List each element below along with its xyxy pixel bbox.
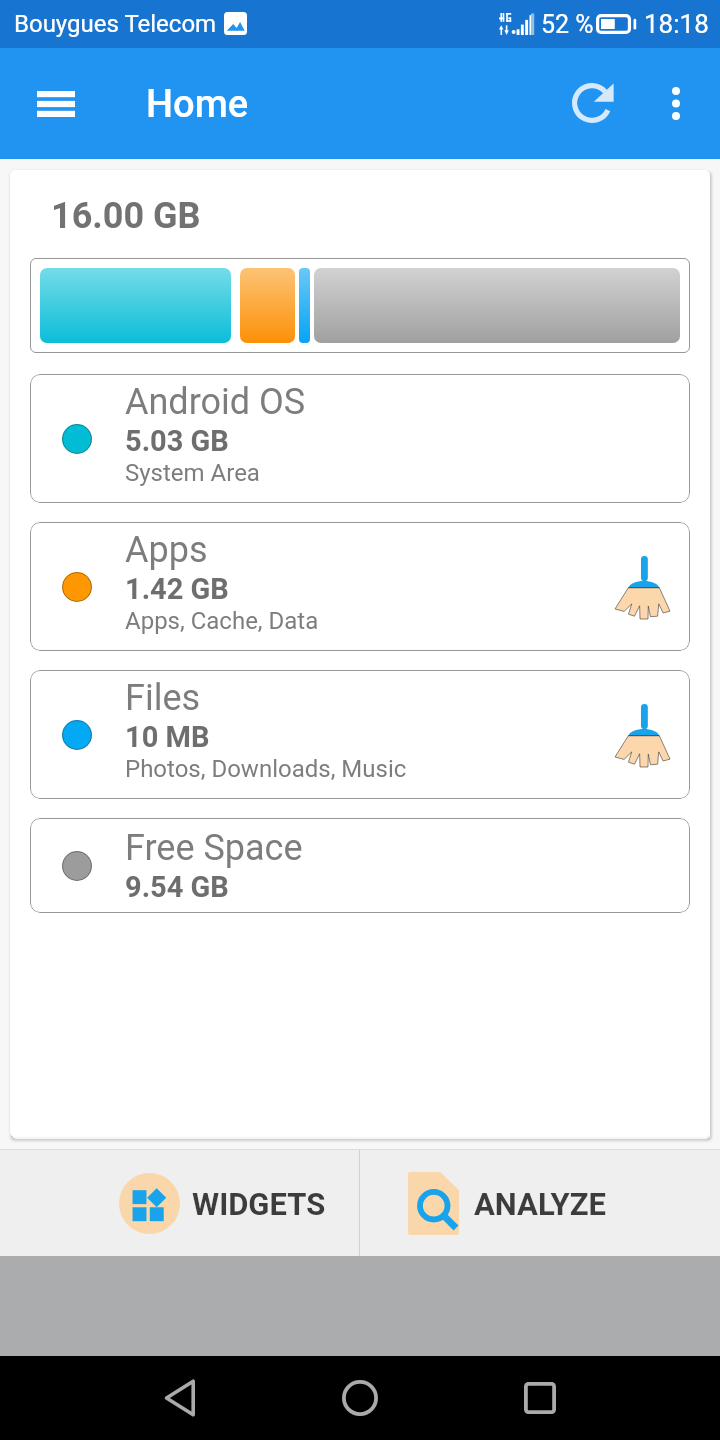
staticText: Free Space	[125, 827, 303, 869]
staticText: ANALYZE	[474, 1186, 606, 1222]
staticText: 5.03 GB	[125, 424, 229, 458]
staticText: 16.00 GB	[51, 195, 201, 237]
staticText: Home	[146, 82, 249, 127]
button[interactable]: Clean	[604, 697, 680, 773]
button[interactable]: WIDGETS	[0, 1150, 359, 1256]
button[interactable]: ANALYZE	[360, 1150, 720, 1256]
staticText: Files	[125, 677, 201, 719]
staticText: Bouygues Telecom	[14, 10, 217, 38]
staticText: System Area	[125, 459, 260, 487]
staticText: 52 %	[541, 10, 594, 39]
staticText: WIDGETS	[192, 1186, 326, 1222]
button[interactable]: Back	[139, 1356, 219, 1440]
button[interactable]: Home	[320, 1356, 400, 1440]
staticText: Apps	[125, 529, 208, 571]
button[interactable]: Files	[30, 670, 690, 799]
button[interactable]: Apps	[30, 522, 690, 651]
button[interactable]: Refresh	[536, 48, 648, 159]
button[interactable]: Android OS	[30, 374, 690, 503]
button[interactable]: Free Space	[30, 818, 690, 913]
staticText: 9.54 GB	[125, 870, 229, 904]
staticText: 18:18	[644, 9, 709, 39]
button[interactable]: Recents	[500, 1356, 580, 1440]
staticText: Android OS	[125, 381, 306, 423]
staticText: 10 MB	[125, 720, 210, 754]
button[interactable]: Clean	[604, 549, 680, 625]
staticText: Photos, Downloads, Music	[125, 755, 407, 783]
staticText: 1.42 GB	[125, 572, 229, 606]
staticText: Apps, Cache, Data	[125, 607, 319, 635]
button[interactable]: Menu	[0, 48, 112, 159]
button[interactable]: More options	[632, 48, 720, 159]
